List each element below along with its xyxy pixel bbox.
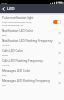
button[interactable]: Calls LED Flashing Frequency — [0, 58, 64, 68]
button[interactable]: Notification LED Color — [0, 28, 64, 38]
staticText: Normal — [2, 44, 10, 47]
button[interactable]: Messages LED Flashing Frequency — [0, 78, 64, 88]
staticText: 10:24 — [1, 1, 8, 4]
staticText: Blue — [2, 34, 7, 37]
staticText: Notification LED Flashing Frequency — [2, 39, 53, 43]
staticText: Fast — [2, 84, 7, 87]
staticText: When new notifications arrive, — [2, 21, 32, 24]
button[interactable]: Pulse notification light — [0, 15, 64, 28]
staticText: Green — [2, 54, 9, 57]
button[interactable]: Notification LED Flashing Frequency — [0, 38, 64, 48]
staticText: Pulse notification light — [2, 16, 34, 20]
staticText: Notification LED Color — [2, 29, 33, 33]
staticText: pulse notification LED — [2, 24, 24, 27]
staticText: LED — [7, 6, 15, 12]
staticText: Normal — [2, 64, 10, 67]
button[interactable]: Calls LED Color — [0, 48, 64, 58]
button[interactable]: Messages LED Color — [0, 68, 64, 78]
staticText: Messages LED Flashing Frequency — [2, 79, 51, 83]
button[interactable]: Navigate up — [0, 4, 7, 13]
staticText: Messages LED Color — [2, 69, 31, 73]
staticText: Blue — [2, 74, 7, 77]
staticText: Calls LED Color — [2, 49, 24, 53]
button[interactable]: Pulse notification light toggle — [53, 20, 61, 24]
staticText: Calls LED Flashing Frequency — [2, 59, 43, 63]
